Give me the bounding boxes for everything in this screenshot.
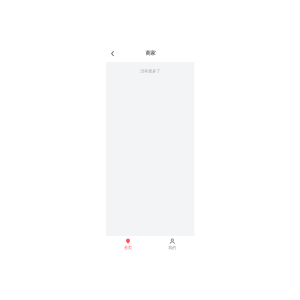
staticText: 我的 (168, 245, 176, 250)
staticText: 商家 (145, 50, 155, 56)
button[interactable]: Back (106, 44, 118, 62)
staticText: 首页 (124, 245, 132, 250)
staticText: 没有更多了 (140, 69, 160, 74)
button[interactable]: 首页 (106, 236, 150, 252)
button[interactable]: 我的 (150, 236, 194, 252)
